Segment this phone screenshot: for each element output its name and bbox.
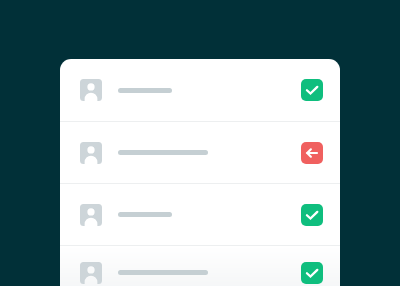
button[interactable]: Approve [60, 59, 340, 121]
button[interactable]: Approve [301, 204, 323, 226]
button[interactable]: Approve [301, 79, 323, 101]
button[interactable]: Return [60, 122, 340, 183]
button[interactable]: Approve [60, 246, 340, 286]
button[interactable]: Approve [301, 262, 323, 284]
button[interactable]: Approve [60, 184, 340, 245]
button[interactable]: Return [301, 142, 323, 164]
